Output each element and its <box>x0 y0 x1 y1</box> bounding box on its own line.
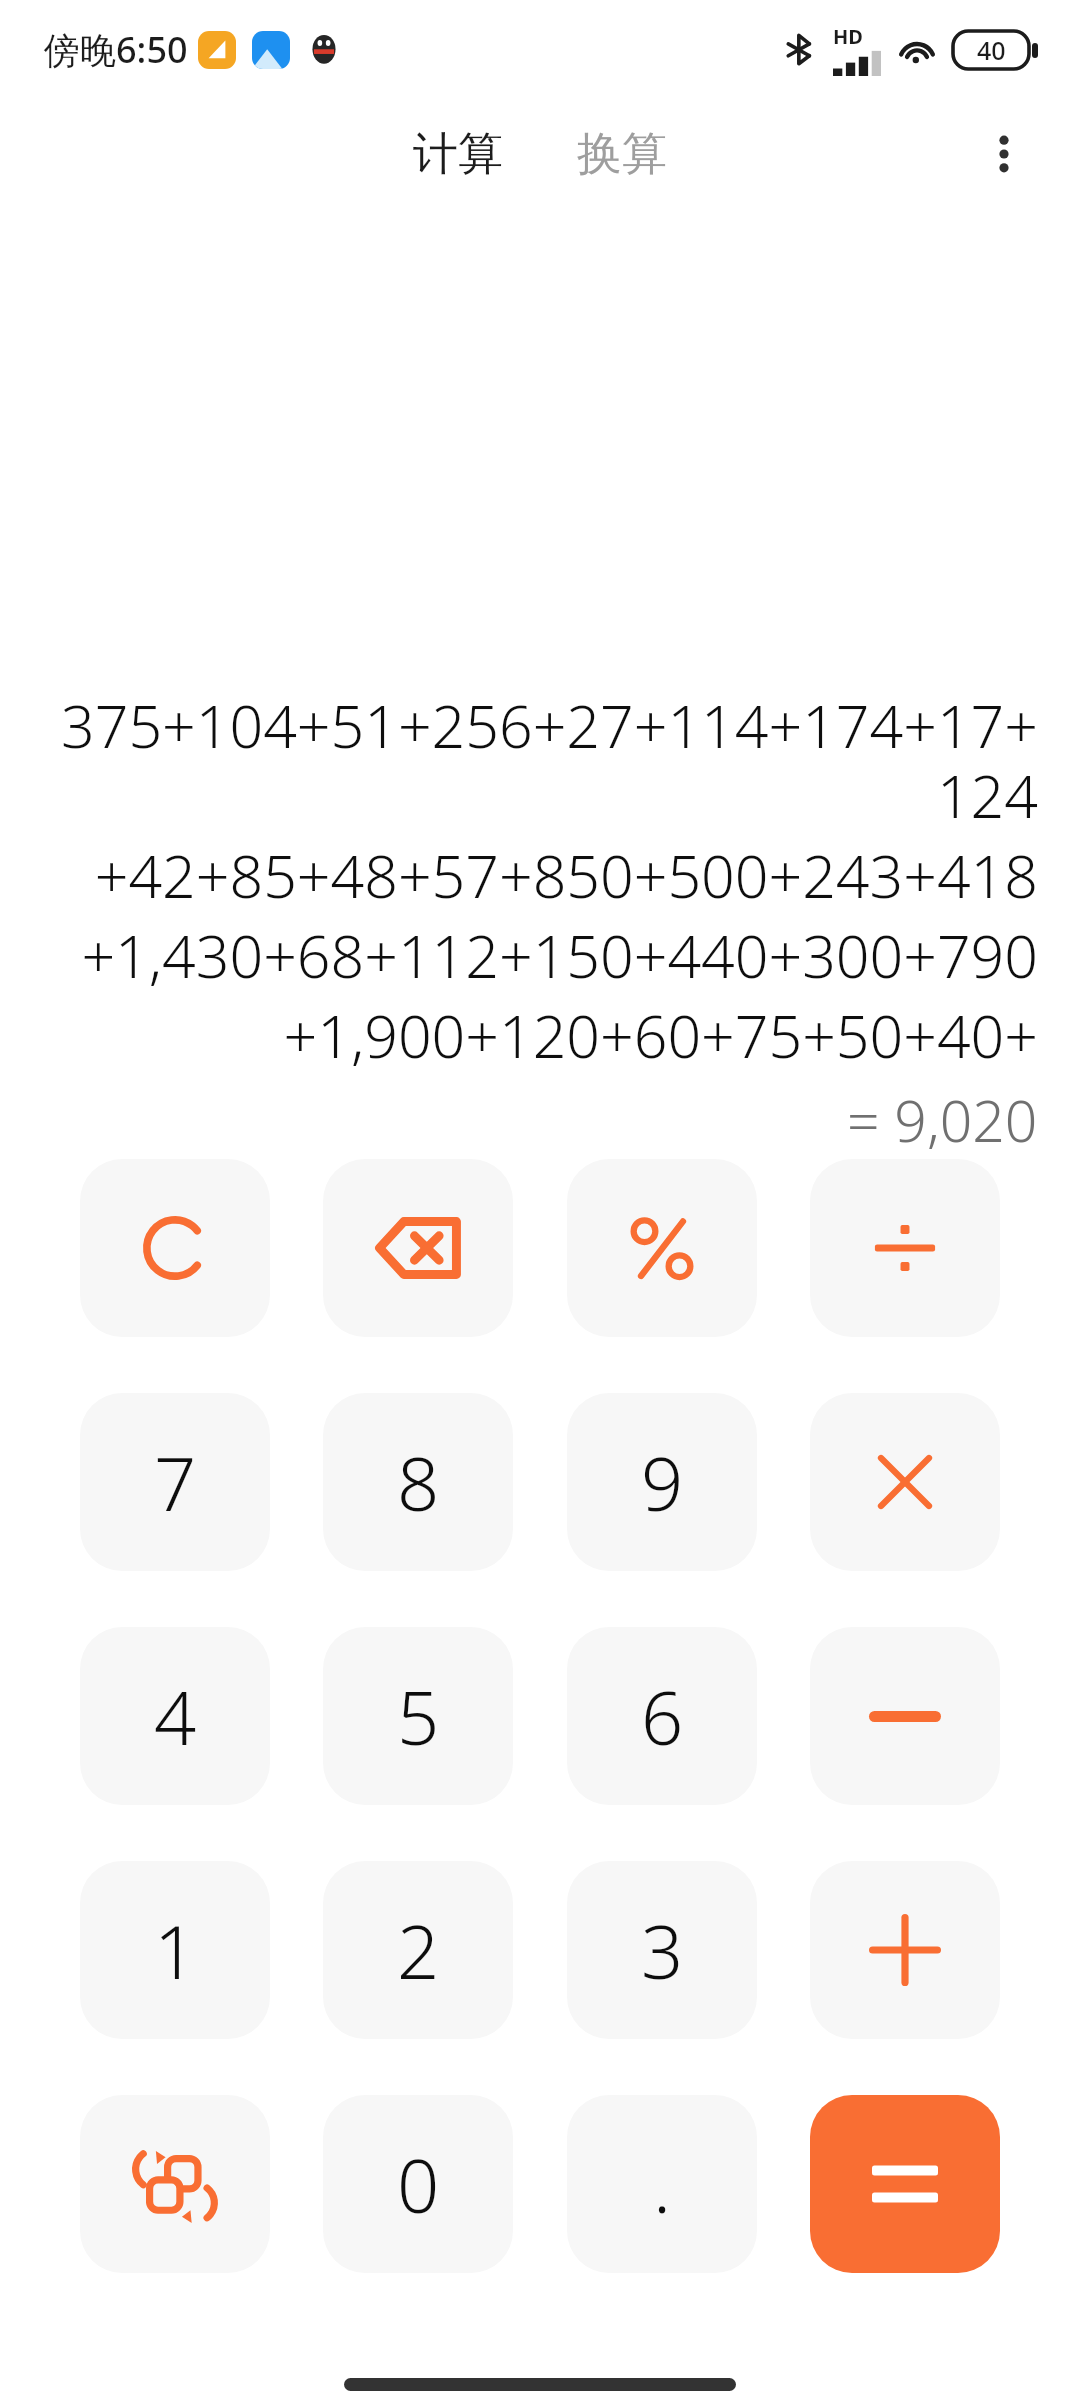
button[interactable]: 9 <box>567 1393 757 1571</box>
staticText: +42+85+48+57+850+500+243+418 <box>94 835 1038 915</box>
button[interactable]: Multiply <box>810 1393 1000 1571</box>
staticText: 1 <box>154 1900 197 2001</box>
button[interactable]: 计算 <box>393 116 523 193</box>
staticText: 2 <box>397 1900 440 2001</box>
staticText: 3 <box>641 1900 684 2001</box>
button[interactable]: 5 <box>323 1627 513 1805</box>
button[interactable]: Backspace <box>323 1159 513 1337</box>
staticText: +1,900+120+60+75+50+40+ <box>283 995 1038 1075</box>
staticText: 7 <box>154 1432 197 1533</box>
button[interactable]: Clear <box>80 1159 270 1337</box>
staticText: 换算 <box>577 126 667 183</box>
button[interactable]: More options <box>956 106 1052 202</box>
button[interactable]: 1 <box>80 1861 270 2039</box>
staticText: 0 <box>397 2134 440 2235</box>
staticText: 375+104+51+256+27+114+174+17+124 <box>40 685 1038 835</box>
button[interactable]: 0 <box>323 2095 513 2273</box>
button[interactable]: 换算 <box>557 116 687 193</box>
button[interactable]: 2 <box>323 1861 513 2039</box>
staticText: 6 <box>641 1666 684 1767</box>
button[interactable]: Divide <box>810 1159 1000 1337</box>
staticText: 8 <box>397 1432 440 1533</box>
button[interactable]: Plus <box>810 1861 1000 2039</box>
button[interactable]: Percent <box>567 1159 757 1337</box>
button[interactable]: . <box>567 2095 757 2273</box>
button[interactable]: 6 <box>567 1627 757 1805</box>
button[interactable]: 3 <box>567 1861 757 2039</box>
button[interactable]: 8 <box>323 1393 513 1571</box>
staticText: 计算 <box>413 126 503 183</box>
button[interactable]: Convert units <box>80 2095 270 2273</box>
staticText: 5 <box>397 1666 440 1767</box>
staticText: 4 <box>154 1666 197 1767</box>
staticText: 傍晚6:50 <box>44 25 188 74</box>
staticText: = 9,020 <box>847 1081 1038 1159</box>
button[interactable]: Minus <box>810 1627 1000 1805</box>
button[interactable]: 7 <box>80 1393 270 1571</box>
staticText: 9 <box>641 1432 684 1533</box>
staticText: +1,430+68+112+150+440+300+790 <box>81 915 1038 995</box>
staticText: 40 <box>977 33 1006 67</box>
button[interactable]: Equals <box>810 2095 1000 2273</box>
button[interactable]: 4 <box>80 1627 270 1805</box>
staticText: HD <box>833 23 863 50</box>
staticText: . <box>653 2134 672 2235</box>
